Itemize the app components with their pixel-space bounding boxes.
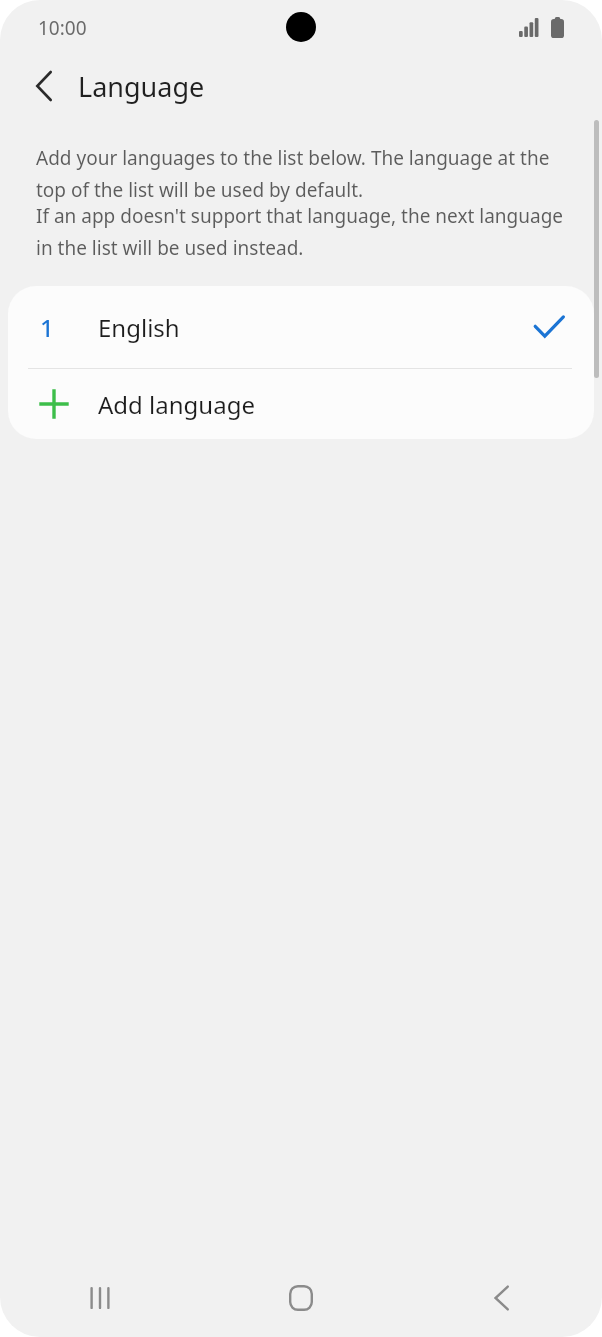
staticText: Language <box>78 68 205 105</box>
button[interactable]: 1 <box>8 286 594 368</box>
button[interactable]: Back <box>401 1259 602 1337</box>
staticText: Add your languages to the list below. Th… <box>36 145 570 203</box>
staticText: 1 <box>40 311 98 344</box>
staticText: Add language <box>98 388 255 421</box>
staticText: English <box>98 311 180 344</box>
staticText: 10:00 <box>38 15 87 41</box>
button[interactable]: Home <box>200 1259 401 1337</box>
button[interactable]: Recent apps <box>0 1259 200 1337</box>
button[interactable]: Add language <box>8 369 594 439</box>
button[interactable]: Back <box>20 62 68 110</box>
staticText: If an app doesn't support that language,… <box>36 203 570 261</box>
